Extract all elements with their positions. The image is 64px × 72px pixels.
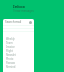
staticText: Photo shared [6, 57, 16, 61]
staticText: Newsletter [6, 53, 16, 57]
staticText: Search mail [5, 20, 22, 24]
button[interactable]: Weekly digest [6, 37, 16, 41]
button[interactable]: Account [29, 21, 32, 24]
staticText: Password reset [6, 61, 16, 65]
staticText: Inbox [13, 4, 25, 10]
staticText: Invoice #2213 [6, 45, 16, 49]
button[interactable]: Flight update [6, 49, 16, 53]
staticText: Team standup [6, 41, 16, 45]
button[interactable]: Invoice #2213 [6, 45, 16, 49]
staticText: Reminder [6, 65, 16, 69]
staticText: Weekly digest [6, 37, 16, 41]
button[interactable]: Team standup [6, 41, 16, 45]
staticText: 9 new messages [13, 9, 34, 13]
button[interactable]: Search mail [3, 19, 34, 25]
button[interactable]: Reminder [6, 65, 16, 69]
button[interactable]: Newsletter [6, 53, 16, 57]
button[interactable]: Password reset [6, 61, 16, 65]
staticText: Flight update [6, 49, 16, 53]
button[interactable]: Photo shared [6, 57, 16, 61]
